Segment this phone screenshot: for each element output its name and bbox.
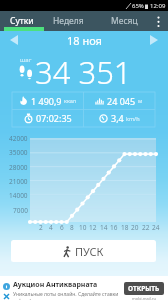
button[interactable]: Close ad xyxy=(3,293,10,300)
staticText: 34 351 xyxy=(35,51,132,93)
staticText: 14 xyxy=(100,223,108,231)
staticText: 4 xyxy=(49,223,53,231)
button[interactable]: More options xyxy=(148,11,168,31)
staticText: 42000 xyxy=(9,134,28,142)
staticText: 14000 xyxy=(9,191,28,199)
button[interactable]: ОТКРЫТЬ xyxy=(124,282,164,295)
staticText: 3,4 xyxy=(111,112,124,124)
staticText: 12 xyxy=(89,223,97,231)
staticText: 18 ноя xyxy=(67,33,102,48)
staticText: Сутки xyxy=(10,15,34,27)
staticText: 21000 xyxy=(9,177,28,185)
button[interactable]: Ad info xyxy=(3,283,10,290)
staticText: 24 xyxy=(152,223,160,231)
button[interactable]: 07:02:35 xyxy=(12,109,83,127)
staticText: km/h xyxy=(126,115,140,122)
staticText: ОТКРЫТЬ xyxy=(128,284,160,293)
staticText: 22 xyxy=(142,223,150,231)
button[interactable]: Previous day xyxy=(0,31,28,49)
button[interactable]: Месяц xyxy=(100,11,148,31)
button[interactable]: Next day xyxy=(140,31,168,49)
staticText: 10 xyxy=(79,223,87,231)
staticText: Уникальные лоты онлайн. Сделайте ставки … xyxy=(13,291,124,300)
staticText: 16 xyxy=(110,223,118,231)
staticText: Аукцион Антикварната xyxy=(13,280,98,290)
button[interactable]: 3,4 xyxy=(83,109,155,127)
button[interactable]: Сутки xyxy=(0,11,44,31)
staticText: 65% xyxy=(132,2,144,10)
staticText: 07:02:35 xyxy=(36,112,72,124)
staticText: Неделя xyxy=(53,15,84,27)
staticText: 7000 xyxy=(13,206,28,214)
staticText: ПУСК xyxy=(75,244,104,259)
staticText: 20 xyxy=(131,223,139,231)
button[interactable]: Неделя xyxy=(44,11,92,31)
staticText: 2 xyxy=(39,223,43,231)
button[interactable]: ПУСК xyxy=(11,240,156,262)
staticText: 35000 xyxy=(9,148,28,156)
staticText: 28000 xyxy=(9,163,28,171)
staticText: 18 xyxy=(121,223,129,231)
button[interactable]: 1 490,9 xyxy=(12,92,83,109)
staticText: 12:09 xyxy=(150,2,166,10)
staticText: м xyxy=(138,97,143,104)
staticText: шаг xyxy=(20,56,32,64)
staticText: mobi.mail.ru xyxy=(132,296,156,300)
staticText: 8 xyxy=(70,223,74,231)
button[interactable]: 24 045 xyxy=(83,92,155,109)
staticText: 6 xyxy=(60,223,64,231)
staticText: ккал xyxy=(64,97,77,104)
staticText: 24 045 xyxy=(107,95,136,107)
staticText: Месяц xyxy=(111,15,138,27)
staticText: 1 490,9 xyxy=(31,95,62,107)
